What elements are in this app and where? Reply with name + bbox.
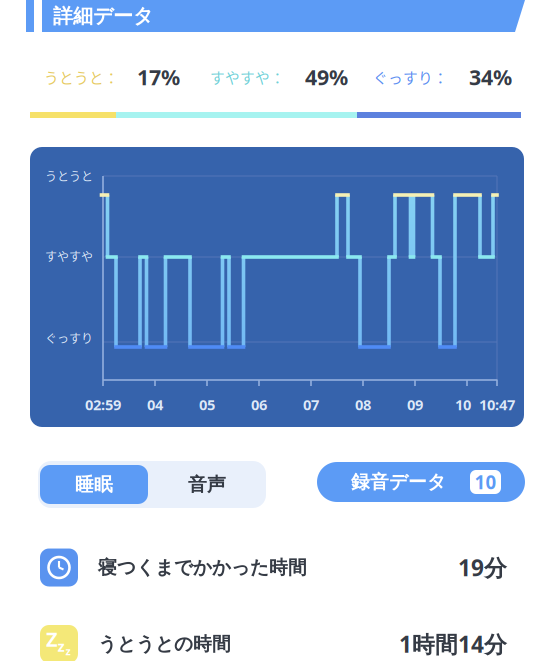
staticText: うとうとの時間 <box>98 632 231 655</box>
staticText: 05 <box>199 395 215 414</box>
staticText: 49% <box>305 63 348 91</box>
staticText: 録音データ <box>351 470 446 493</box>
staticText: z <box>65 644 70 658</box>
staticText: すやすや： <box>210 66 285 88</box>
staticText: 睡眠 <box>75 473 113 496</box>
staticText: 06 <box>251 395 267 414</box>
staticText: Z <box>46 626 58 652</box>
staticText: 10:47 <box>479 395 515 414</box>
staticText: 17% <box>137 63 180 91</box>
staticText: ぐっすり <box>45 329 93 347</box>
staticText: 02:59 <box>85 395 121 414</box>
staticText: うとうと： <box>44 66 119 88</box>
staticText: 19分 <box>458 552 507 582</box>
staticText: 10 <box>474 470 496 494</box>
staticText: 1時間14分 <box>399 629 507 659</box>
staticText: ぐっすり： <box>373 66 448 88</box>
staticText: すやすや <box>45 247 93 265</box>
staticText: 09 <box>407 395 423 414</box>
staticText: 10 <box>455 395 471 414</box>
staticText: 08 <box>355 395 371 414</box>
staticText: 詳細データ <box>53 4 153 28</box>
staticText: 音声 <box>188 473 226 496</box>
button[interactable]: 音声 <box>152 465 262 504</box>
staticText: 寝つくまでかかった時間 <box>98 556 307 579</box>
staticText: z <box>57 636 64 656</box>
button[interactable]: 録音データ <box>317 462 525 502</box>
staticText: 34% <box>469 63 512 91</box>
button[interactable]: 睡眠 <box>40 465 148 504</box>
staticText: 04 <box>147 395 163 414</box>
staticText: 07 <box>303 395 319 414</box>
staticText: うとうと <box>45 167 93 185</box>
